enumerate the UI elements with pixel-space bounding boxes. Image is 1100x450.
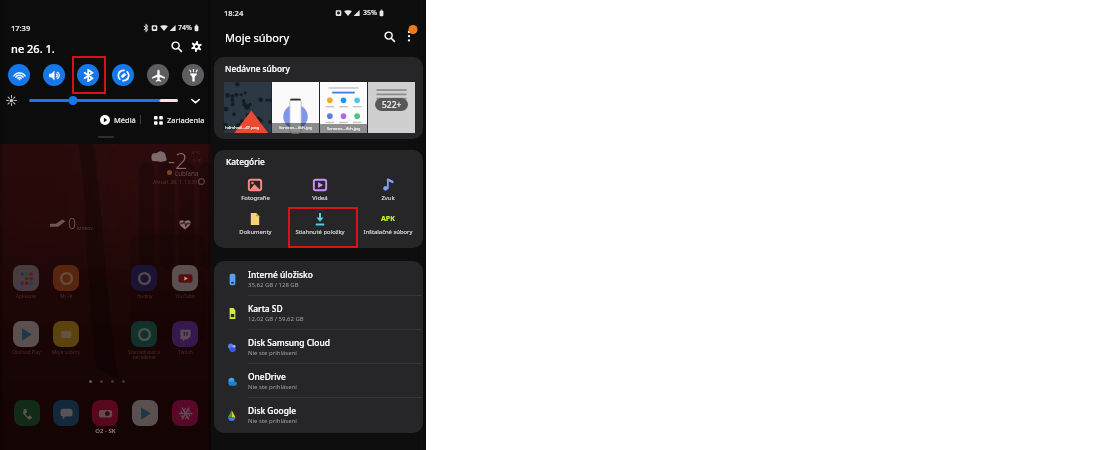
staticText: Hodiny	[136, 293, 153, 300]
button[interactable]: OneDrive	[214, 364, 423, 398]
staticText: Nedávne súbory	[225, 63, 290, 74]
button[interactable]: App	[53, 400, 79, 426]
staticText: Moje súbory	[52, 349, 80, 356]
staticText: Nie ste prihlásení	[248, 417, 297, 425]
staticText: 35,62 GB / 128 GB	[248, 281, 299, 289]
staticText: APK	[381, 214, 395, 224]
button[interactable]: Auto rotate	[112, 64, 134, 86]
staticText: 18:24	[224, 8, 244, 18]
staticText: Mi Fit	[60, 293, 73, 300]
button[interactable]: Aplikácie	[7, 265, 45, 300]
button[interactable]: More options	[401, 25, 421, 45]
staticText: hdmhsd...47.png	[225, 124, 260, 130]
button[interactable]: Sound	[43, 64, 65, 86]
staticText: Aplikácie	[16, 293, 36, 300]
button[interactable]: App	[172, 400, 198, 426]
button[interactable]: Zariadenia	[152, 113, 207, 127]
staticText: Inštalačné súbory	[363, 228, 413, 236]
button[interactable]: Videá	[292, 178, 348, 202]
button[interactable]: Screens...ifch.jpg	[272, 82, 319, 133]
button[interactable]: Search	[380, 27, 398, 45]
staticText: Obchod Play	[12, 349, 41, 356]
button[interactable]: Obchod Play	[7, 321, 45, 356]
staticText: 35%	[363, 8, 377, 18]
button[interactable]: YouTube	[166, 265, 204, 300]
button[interactable]: Starostlivosť o zariadenie	[125, 321, 163, 361]
button[interactable]: Moje súbory	[47, 321, 85, 356]
staticText: Disk Google	[248, 405, 296, 416]
staticText: Twitch	[178, 349, 193, 356]
button[interactable]: APK	[360, 212, 416, 236]
button[interactable]: 522+	[368, 82, 415, 133]
staticText: OneDrive	[248, 371, 286, 382]
staticText: ne 26. 1.	[11, 41, 55, 56]
staticText: krokov	[77, 225, 93, 232]
staticText: Médiá	[114, 115, 136, 125]
staticText: Moje súbory	[225, 30, 290, 45]
button[interactable]: Interné úložisko	[214, 262, 423, 296]
staticText: Kategórie	[226, 156, 265, 167]
staticText: Disk Samsung Cloud	[248, 337, 330, 348]
staticText: Nie ste prihlásení	[248, 383, 297, 391]
staticText: Aktual. 26. 1. 13:39	[153, 179, 198, 186]
staticText: Dokumenty	[239, 228, 272, 236]
button[interactable]: Airplane mode	[147, 64, 169, 86]
button[interactable]: Zvuk	[360, 178, 416, 202]
staticText: Ľubľana	[175, 169, 199, 177]
staticText: 74%	[178, 23, 192, 33]
staticText: 4 °C	[192, 150, 200, 156]
button[interactable]: Twitch	[166, 321, 204, 356]
staticText: Karta SD	[248, 303, 283, 314]
button[interactable]: hdmhsd...47.png	[224, 82, 271, 133]
button[interactable]: Expand quick settings	[188, 93, 203, 108]
button[interactable]: App	[14, 400, 40, 426]
button[interactable]: Karta SD	[214, 296, 423, 330]
button[interactable]: App	[92, 400, 118, 426]
button[interactable]: Médiá	[98, 113, 138, 127]
button[interactable]: Mi Fit	[47, 265, 85, 300]
button[interactable]: Disk Google	[214, 398, 423, 432]
button[interactable]: Flashlight	[182, 64, 204, 86]
staticText: Starostlivosť o zariadenie	[125, 349, 163, 361]
button[interactable]: Stiahnuté položky	[292, 212, 348, 236]
staticText: Stiahnuté položky	[295, 228, 345, 236]
staticText: Nie ste prihlásení	[248, 349, 297, 357]
button[interactable]: Bluetooth	[77, 64, 99, 86]
staticText: -5 °C	[192, 158, 202, 164]
staticText: Zariadenia	[167, 115, 205, 125]
button[interactable]: Dokumenty	[227, 212, 283, 236]
staticText: 0	[68, 214, 76, 233]
button[interactable]: Fotografie	[227, 178, 283, 202]
button[interactable]: Settings	[188, 38, 205, 55]
staticText: O2 - SK	[0, 427, 211, 435]
staticText: Fotografie	[241, 194, 270, 202]
staticText: Screens...ifch.jpg	[327, 126, 361, 132]
button[interactable]: App	[132, 400, 158, 426]
button[interactable]: Screens...ifch.jpg	[320, 82, 367, 133]
staticText: 522+	[382, 99, 402, 111]
staticText: Videá	[312, 194, 328, 202]
button[interactable]: Nedávne súbory	[214, 57, 423, 139]
button[interactable]: Hodiny	[125, 265, 163, 300]
staticText: 12,02 GB / 59,62 GB	[248, 315, 304, 323]
staticText: 17:39	[11, 23, 31, 33]
staticText: Zvuk	[381, 194, 395, 202]
button[interactable]: Wi-Fi	[8, 64, 30, 86]
staticText: Screens...ifch.jpg	[279, 125, 313, 131]
staticText: -2	[168, 145, 188, 175]
staticText: Interné úložisko	[248, 269, 313, 280]
button[interactable]: Disk Samsung Cloud	[214, 330, 423, 364]
staticText: YouTube	[175, 293, 195, 300]
button[interactable]: Search	[168, 38, 185, 55]
